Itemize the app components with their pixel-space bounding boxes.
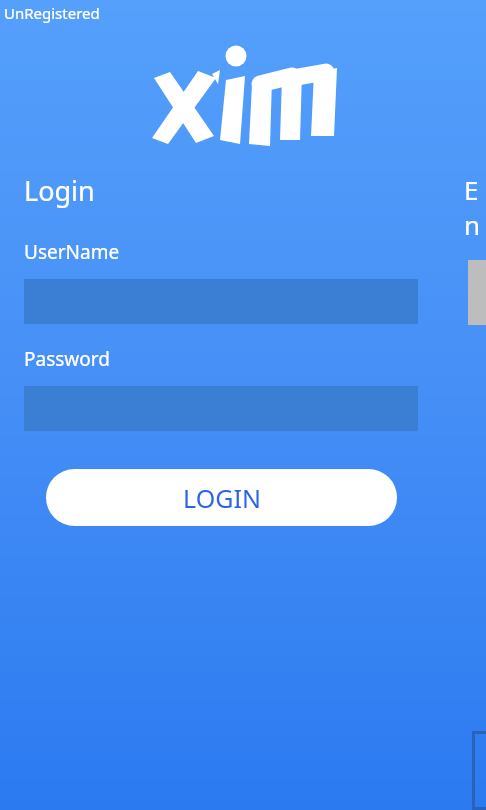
button[interactable]: LOGIN xyxy=(46,469,397,526)
button[interactable]: UnRegistered xyxy=(4,3,100,23)
staticText: LOGIN xyxy=(183,481,261,515)
staticText: En xyxy=(464,172,486,242)
staticText: Login xyxy=(24,172,95,209)
other: XIM logo xyxy=(148,40,343,150)
staticText: Password xyxy=(24,346,110,372)
staticText: UserName xyxy=(24,239,120,265)
